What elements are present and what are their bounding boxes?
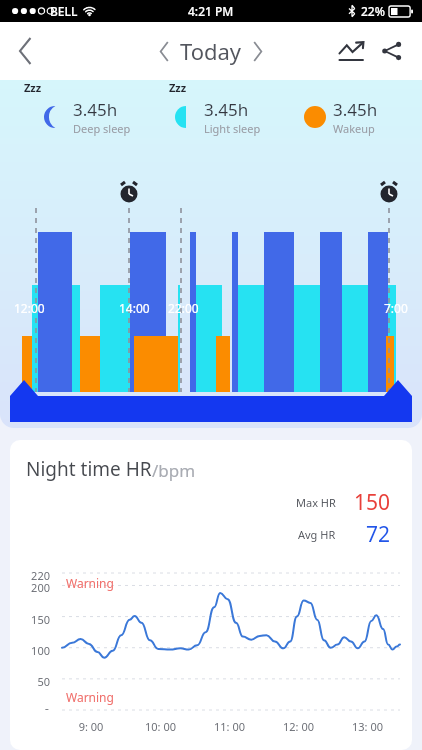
staticText: 7:00: [384, 300, 408, 316]
staticText: 22:00: [168, 300, 199, 316]
staticText: 150: [346, 488, 390, 517]
staticText: 72: [346, 520, 390, 549]
staticText: 200: [10, 580, 50, 595]
button[interactable]: Share: [372, 31, 412, 71]
staticText: Deep sleep: [73, 121, 131, 136]
staticText: Light sleep: [204, 121, 261, 136]
staticText: BELL: [50, 3, 78, 19]
staticText: Avg HR: [298, 527, 336, 542]
staticText: 50: [10, 674, 50, 689]
staticText: 100: [10, 643, 50, 658]
staticText: Warning: [66, 575, 114, 591]
staticText: 10: 00: [126, 719, 195, 734]
staticText: /bpm: [152, 459, 196, 482]
button[interactable]: Today: [159, 36, 263, 66]
button[interactable]: Back: [4, 29, 48, 73]
staticText: Wakeup: [333, 121, 375, 136]
staticText: 13: 00: [333, 719, 402, 734]
staticText: 3.45h: [204, 98, 249, 121]
staticText: 22%: [361, 3, 385, 19]
staticText: 220: [10, 568, 50, 583]
button[interactable]: Trends: [332, 31, 372, 71]
staticText: Max HR: [296, 495, 336, 510]
staticText: 3.45h: [73, 98, 118, 121]
staticText: Night time HR: [26, 456, 152, 482]
staticText: Zzz: [24, 80, 42, 95]
staticText: 12: 00: [264, 719, 333, 734]
staticText: 150: [10, 612, 50, 627]
staticText: 0: [10, 705, 50, 710]
staticText: 4:21 PM: [188, 3, 234, 19]
staticText: 9: 00: [56, 719, 126, 734]
staticText: 11: 00: [195, 719, 264, 734]
staticText: Zzz: [169, 80, 187, 95]
staticText: 3.45h: [333, 98, 378, 121]
staticText: Today: [180, 36, 242, 66]
staticText: Warning: [66, 689, 114, 705]
staticText: 12:00: [14, 300, 45, 316]
staticText: 14:00: [119, 300, 150, 316]
